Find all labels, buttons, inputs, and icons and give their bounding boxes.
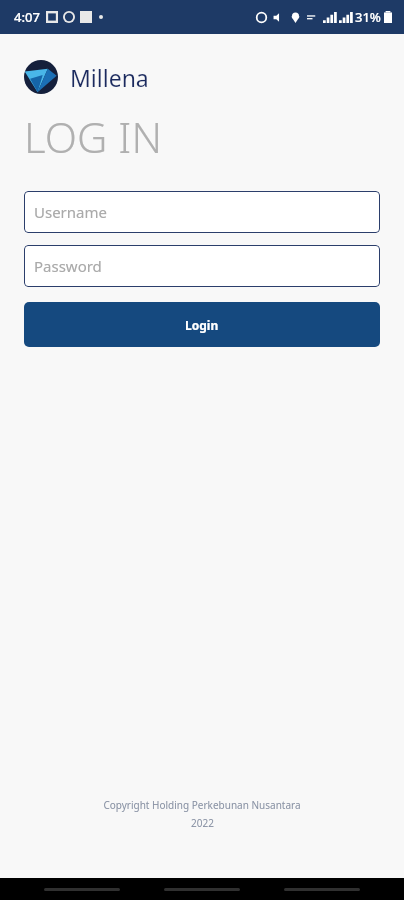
button[interactable]: Navigation button xyxy=(284,888,360,891)
staticText: 4:07 xyxy=(14,8,40,26)
staticText: Copyright Holding Perkebunan Nusantara xyxy=(103,798,301,812)
button[interactable]: Password xyxy=(24,245,380,287)
staticText: 31% xyxy=(355,8,381,26)
staticText: Password xyxy=(34,256,102,276)
staticText: Login xyxy=(185,317,219,333)
button[interactable]: Navigation button xyxy=(44,888,120,891)
button[interactable]: Navigation button xyxy=(164,888,240,891)
staticText: LOG IN xyxy=(24,108,163,165)
staticText: Username xyxy=(34,202,107,222)
button[interactable]: Login xyxy=(24,302,380,347)
staticText: 2022 xyxy=(191,816,214,830)
staticText: Millena xyxy=(70,62,149,93)
button[interactable]: Username xyxy=(24,191,380,233)
